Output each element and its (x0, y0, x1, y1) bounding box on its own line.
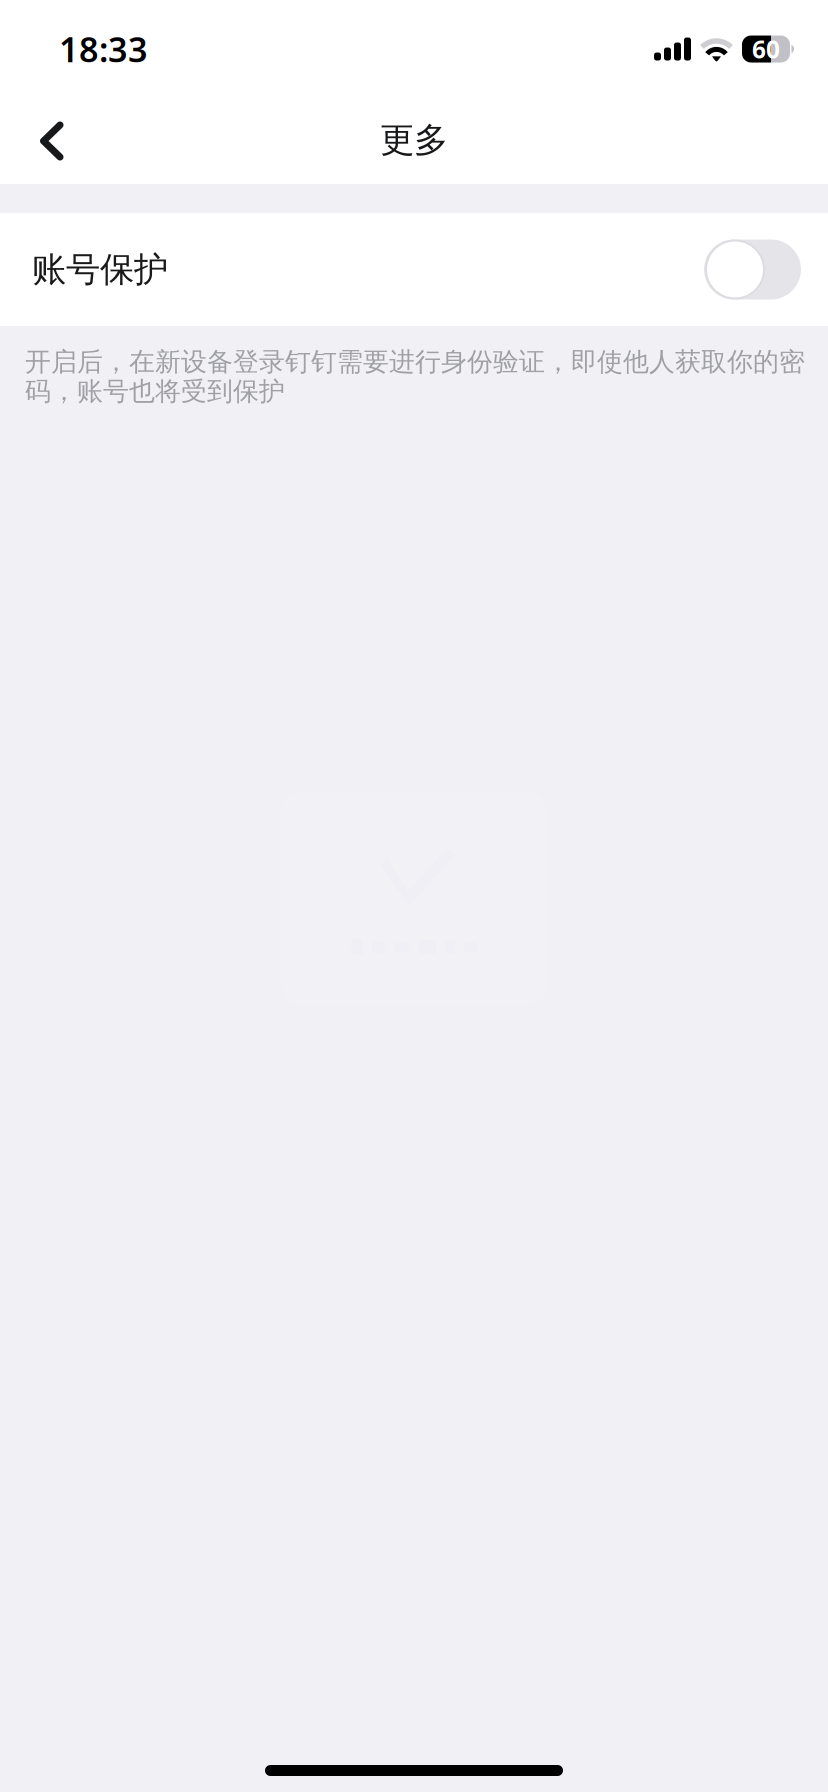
button[interactable]: 返回 (0, 96, 100, 184)
staticText: 开启后，在新设备登录钉钉需要进行身份验证，即使他人获取你的密码，账号也将受到保护 (25, 347, 805, 406)
button[interactable]: 账号保护 (704, 239, 801, 299)
staticText: 18:33 (59, 26, 148, 72)
staticText: 60 (752, 32, 780, 66)
staticText: 更多 (380, 118, 448, 162)
staticText: 账号保护 (32, 248, 168, 291)
